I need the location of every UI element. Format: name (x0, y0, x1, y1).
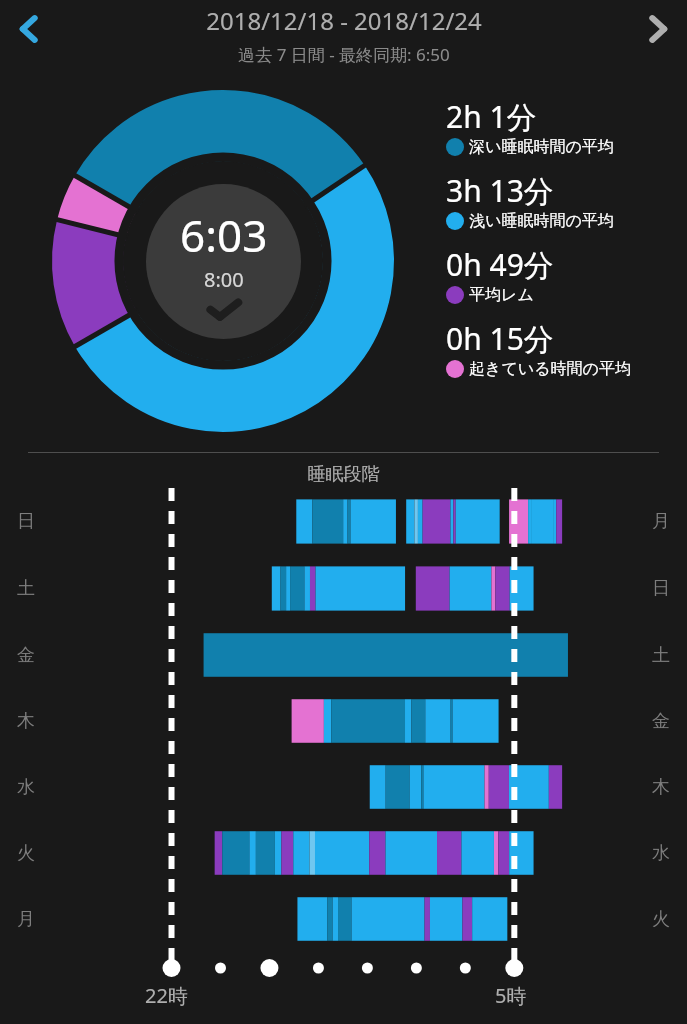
button[interactable]: 2h 1分 (446, 96, 685, 157)
staticText: 土 (17, 577, 35, 600)
staticText: 睡眠段階 (0, 463, 687, 486)
staticText: 月 (652, 510, 670, 533)
staticText: 深い睡眠時間の平均 (469, 137, 614, 157)
button[interactable]: 0h 49分 (446, 244, 685, 305)
staticText: 3h 13分 (446, 170, 554, 211)
staticText: 6:03 (180, 205, 268, 265)
staticText: 浅い睡眠時間の平均 (469, 211, 614, 231)
staticText: 過去 7 日間 - 最終同期: 6:50 (238, 43, 450, 66)
staticText: 月 (17, 908, 35, 931)
staticText: 0h 49分 (446, 244, 554, 285)
button[interactable] (52, 688, 635, 754)
button[interactable]: 6:03 (146, 184, 301, 339)
staticText: 平均レム (469, 285, 534, 305)
staticText: 2h 1分 (446, 96, 537, 137)
button[interactable]: Previous week (0, 0, 58, 58)
staticText: 日 (652, 577, 670, 600)
button[interactable] (52, 555, 635, 622)
button[interactable]: Next week (629, 0, 687, 58)
staticText: 2018/12/18 - 2018/12/24 (206, 4, 482, 37)
staticText: 水 (17, 776, 35, 799)
button[interactable] (52, 622, 635, 688)
staticText: 起きている時間の平均 (469, 359, 631, 379)
button[interactable] (52, 820, 635, 886)
staticText: 0h 15分 (446, 318, 554, 359)
button[interactable] (52, 488, 635, 555)
staticText: 火 (17, 842, 35, 865)
staticText: 金 (652, 710, 670, 733)
button[interactable]: 0h 15分 (446, 318, 685, 379)
button[interactable]: 3h 13分 (446, 170, 685, 231)
staticText: 金 (17, 644, 35, 667)
button[interactable] (52, 754, 635, 820)
staticText: 日 (17, 510, 35, 533)
staticText: 土 (652, 644, 670, 667)
button[interactable] (52, 886, 635, 952)
staticText: 火 (652, 908, 670, 931)
staticText: 5時 (495, 982, 527, 1009)
staticText: 8:00 (204, 266, 244, 293)
staticText: 木 (17, 710, 35, 733)
staticText: 水 (652, 842, 670, 865)
staticText: 22時 (145, 982, 188, 1009)
staticText: 木 (652, 776, 670, 799)
